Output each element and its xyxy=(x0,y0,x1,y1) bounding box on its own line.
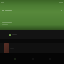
button[interactable] xyxy=(0,43,64,53)
button[interactable]: Back xyxy=(1,9,4,12)
button[interactable]: Search xyxy=(30,56,35,61)
button[interactable] xyxy=(0,30,64,39)
button[interactable]: More options xyxy=(60,9,63,12)
button[interactable]: Home xyxy=(12,56,17,61)
button[interactable]: Profile xyxy=(47,56,52,61)
